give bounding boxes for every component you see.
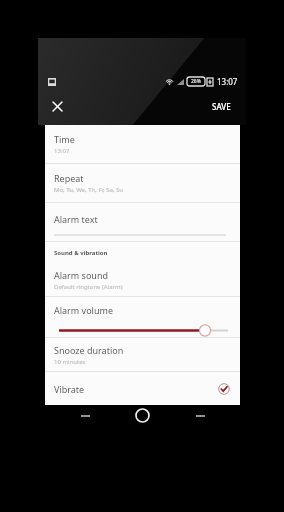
- staticText: Alarm volume: [54, 304, 113, 316]
- button[interactable]: Alarm text: [45, 203, 240, 241]
- button[interactable]: Back: [74, 405, 96, 426]
- button[interactable]: SAVE: [207, 96, 236, 117]
- staticText: Sound & vibration: [54, 249, 108, 257]
- staticText: 10 minutes: [54, 358, 86, 366]
- staticText: Time: [54, 133, 75, 145]
- staticText: Default ringtone (Alarm): [54, 283, 123, 291]
- button[interactable]: Time: [45, 125, 240, 163]
- staticText: Alarm text: [54, 213, 98, 225]
- staticText: 26%: [191, 78, 201, 85]
- button[interactable]: Vibrate: [45, 372, 240, 405]
- button[interactable]: Home: [131, 405, 153, 426]
- button[interactable]: Close: [46, 95, 68, 117]
- button[interactable]: Alarm volume: [45, 297, 240, 337]
- button[interactable]: Repeat: [45, 164, 240, 202]
- staticText: 13:07: [217, 76, 238, 87]
- staticText: Repeat: [54, 172, 84, 184]
- staticText: Alarm sound: [54, 269, 109, 281]
- staticText: 13:07: [54, 147, 70, 155]
- staticText: Snooze duration: [54, 344, 124, 356]
- staticText: Mo, Tu, We, Th, Fr, Sa, Su: [54, 186, 124, 194]
- button[interactable]: Recents: [189, 405, 211, 426]
- button[interactable]: Snooze duration: [45, 338, 240, 371]
- staticText: SAVE: [212, 101, 231, 112]
- staticText: Vibrate: [54, 383, 85, 395]
- button[interactable]: Alarm sound: [45, 263, 240, 296]
